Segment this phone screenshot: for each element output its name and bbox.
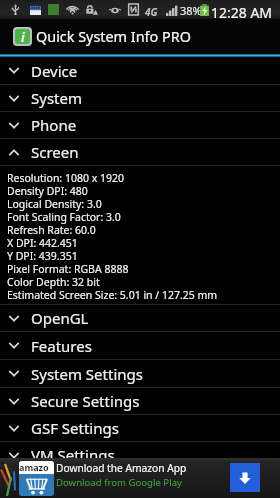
staticText: Density DPI: 480 bbox=[7, 185, 88, 198]
button[interactable]: OpenGL bbox=[0, 305, 280, 331]
button[interactable]: Download bbox=[230, 463, 260, 492]
staticText: Screen bbox=[31, 142, 79, 162]
button[interactable]: GSF Settings bbox=[0, 415, 280, 441]
button[interactable]: Features bbox=[0, 332, 280, 359]
staticText: Color Depth: 32 bit bbox=[7, 276, 100, 289]
staticText: Y DPI: 439.351 bbox=[7, 250, 78, 263]
button[interactable]: Phone bbox=[0, 112, 280, 138]
staticText: Logical Density: 3.0 bbox=[7, 198, 102, 211]
staticText: OpenGL bbox=[31, 308, 89, 328]
staticText: Estimated Screen Size: 5.01 in / 127.25 … bbox=[7, 289, 218, 302]
staticText: 38% bbox=[180, 3, 202, 18]
staticText: X DPI: 442.451 bbox=[7, 237, 78, 250]
staticText: 4G bbox=[145, 5, 158, 19]
button[interactable]: Screen bbox=[0, 139, 280, 165]
staticText: System Settings bbox=[31, 364, 143, 384]
button[interactable]: Secure Settings bbox=[0, 388, 280, 414]
staticText: Secure Settings bbox=[31, 391, 140, 411]
staticText: Features bbox=[31, 336, 92, 356]
staticText: VM Settings bbox=[31, 445, 115, 465]
staticText: Download from Google Play bbox=[56, 476, 182, 489]
staticText: GSF Settings bbox=[31, 418, 119, 438]
staticText: amazon bbox=[19, 461, 54, 474]
staticText: Font Scaling Factor: 3.0 bbox=[7, 211, 121, 224]
button[interactable]: amazon bbox=[0, 458, 280, 498]
staticText: System bbox=[31, 88, 82, 108]
button[interactable]: VM Settings bbox=[0, 442, 280, 468]
staticText: Resolution: 1080 x 1920 bbox=[7, 172, 124, 185]
staticText: i bbox=[21, 29, 25, 44]
staticText: Device bbox=[31, 61, 78, 81]
button[interactable]: System Settings bbox=[0, 360, 280, 387]
staticText: Quick System Info PRO bbox=[36, 27, 191, 47]
staticText: Download the Amazon App bbox=[56, 461, 187, 475]
button[interactable]: System bbox=[0, 85, 280, 111]
staticText: Phone bbox=[31, 115, 77, 135]
staticText: Pixel Format: RGBA 8888 bbox=[7, 263, 129, 276]
staticText: Refresh Rate: 60.0 bbox=[7, 224, 96, 237]
staticText: 12:28 AM bbox=[211, 3, 273, 22]
button[interactable]: Device bbox=[0, 57, 280, 84]
